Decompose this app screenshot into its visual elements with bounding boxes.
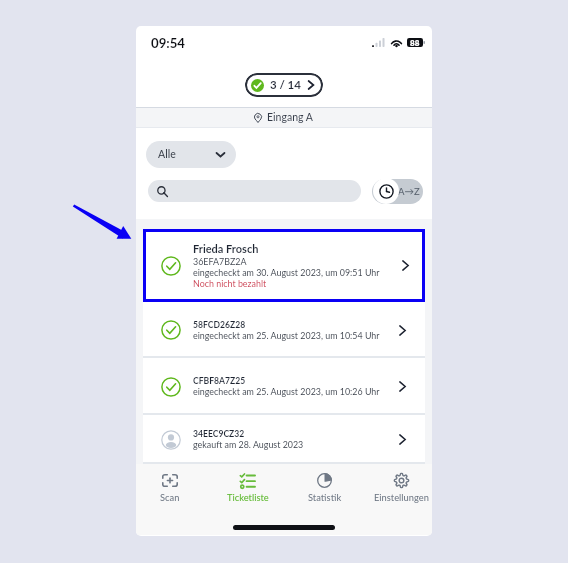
staticText: 88	[410, 38, 420, 47]
staticText: eingecheckt am 25. August 2023, um 10:26…	[193, 386, 380, 397]
button[interactable]: CFBF8A7Z25	[143, 358, 425, 415]
button[interactable]: Alle	[146, 141, 236, 168]
staticText: 58FCD26Z28	[193, 320, 246, 330]
button[interactable]: Scan	[136, 464, 209, 511]
button[interactable]: Frieda Frosch	[143, 229, 425, 302]
staticText: Einstellungen	[374, 492, 429, 503]
button[interactable]: Statistik	[286, 464, 363, 511]
staticText: A→Z	[398, 186, 420, 197]
button[interactable]: Einstellungen	[363, 464, 432, 511]
staticText: 36EFA7BZ2A	[193, 256, 247, 267]
button[interactable]: Ticketliste	[209, 464, 286, 511]
staticText: eingecheckt am 25. August 2023, um 10:54…	[193, 330, 380, 341]
button[interactable]: 34EEC9CZ32	[143, 415, 425, 464]
button[interactable]: Sortierung umschalten	[372, 179, 423, 204]
button[interactable]	[148, 180, 361, 202]
staticText: 34EEC9CZ32	[193, 429, 245, 439]
staticText: Eingang A	[267, 111, 314, 124]
staticText: Alle	[158, 148, 176, 161]
staticText: Scan	[160, 492, 180, 503]
staticText: Ticketliste	[227, 492, 269, 503]
button[interactable]: 58FCD26Z28	[143, 302, 425, 358]
staticText: 3 / 14	[270, 78, 301, 92]
staticText: Statistik	[308, 492, 342, 503]
staticText: 09:54	[151, 35, 185, 51]
staticText: gekauft am 28. August 2023	[193, 439, 304, 450]
staticText: CFBF8A7Z25	[193, 376, 246, 386]
button[interactable]: 3 / 14	[245, 73, 323, 97]
staticText: Noch nicht bezahlt	[193, 278, 267, 289]
staticText: eingecheckt am 30. August 2023, um 09:51…	[193, 267, 380, 278]
staticText: Frieda Frosch	[193, 242, 259, 255]
